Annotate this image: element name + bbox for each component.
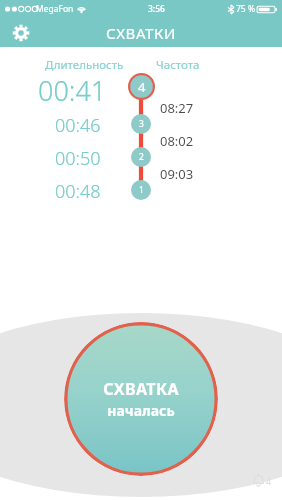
staticText: 00:48 <box>55 179 101 201</box>
button[interactable]: 1 <box>131 180 151 200</box>
staticText: 09:03 <box>160 165 194 183</box>
staticText: 00:46 <box>55 113 101 135</box>
button[interactable]: 3 <box>131 114 151 134</box>
staticText: 3 <box>139 118 144 130</box>
staticText: Длительность <box>45 57 124 73</box>
staticText: 4 <box>138 78 146 96</box>
staticText: 2 <box>139 151 144 163</box>
staticText: 00:50 <box>55 146 101 168</box>
staticText: 3:56 <box>148 3 165 15</box>
button[interactable]: 2 <box>131 147 151 167</box>
staticText: 08:02 <box>160 132 194 150</box>
staticText: 08:27 <box>160 99 194 117</box>
button[interactable]: Settings <box>9 21 33 45</box>
staticText: 4 <box>266 475 272 487</box>
button[interactable]: СХВАТКА <box>64 322 218 476</box>
staticText: СХВАТКА <box>103 378 179 400</box>
staticText: Частота <box>156 57 200 73</box>
staticText: MegaFon <box>36 3 74 15</box>
button[interactable]: Notifications <box>246 464 276 494</box>
staticText: 75 % <box>236 3 255 15</box>
staticText: 1 <box>139 184 144 196</box>
staticText: началась <box>107 401 175 420</box>
staticText: 00:41 <box>38 72 107 101</box>
staticText: СХВАТКИ <box>106 23 176 43</box>
